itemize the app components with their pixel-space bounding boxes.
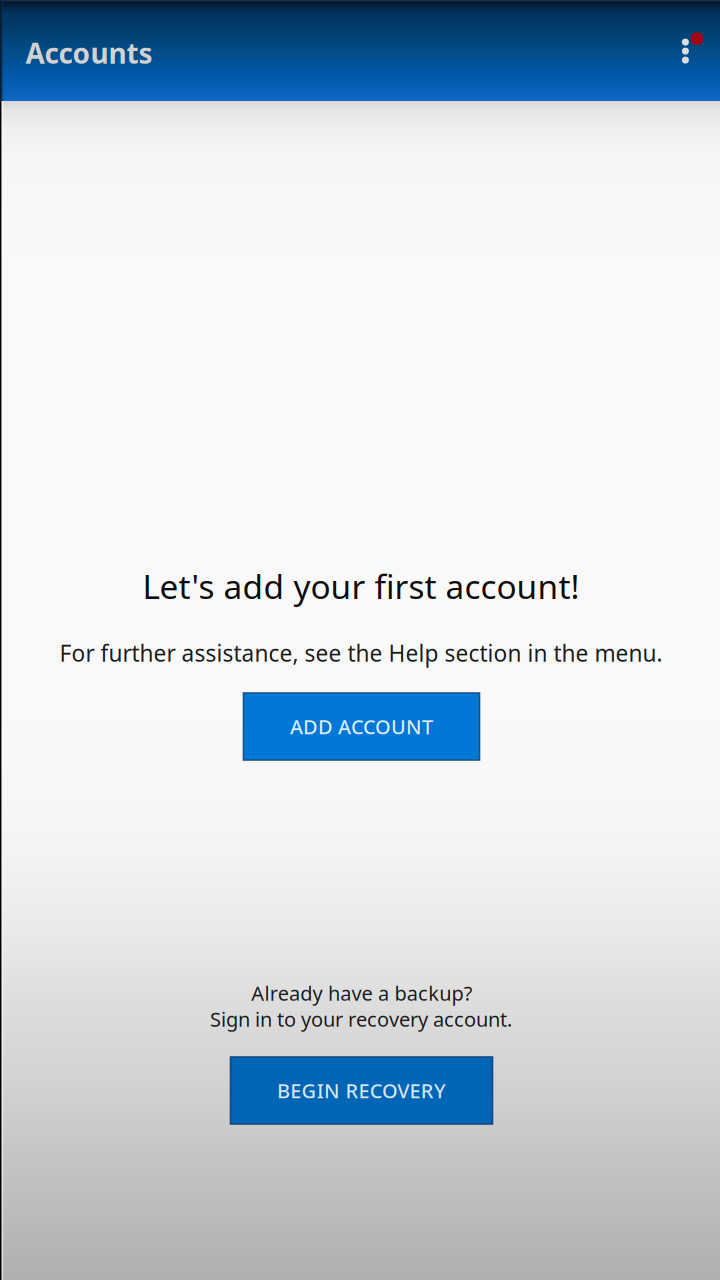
- staticText: For further assistance, see the Help sec…: [59, 638, 662, 668]
- staticText: BEGIN RECOVERY: [277, 1077, 446, 1104]
- button[interactable]: More options: [654, 18, 716, 80]
- button[interactable]: BEGIN RECOVERY: [230, 1057, 492, 1124]
- button[interactable]: ADD ACCOUNT: [243, 693, 479, 760]
- staticText: Let's add your first account!: [142, 564, 579, 608]
- staticText: Sign in to your recovery account.: [210, 1006, 512, 1032]
- staticText: Already have a backup?: [251, 980, 473, 1006]
- staticText: Accounts: [25, 34, 152, 72]
- staticText: ADD ACCOUNT: [290, 713, 433, 740]
